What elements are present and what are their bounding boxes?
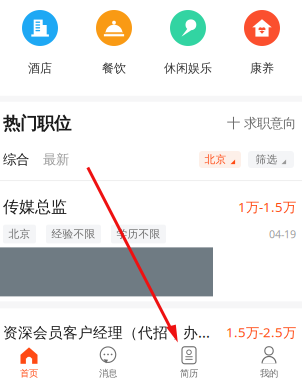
staticText: 消息 <box>99 368 117 379</box>
button[interactable]: 传媒总监 <box>0 181 302 243</box>
staticText: 酒店 <box>28 61 52 76</box>
button[interactable]: 首页 <box>0 347 59 379</box>
button[interactable]: 筛选 <box>241 151 294 168</box>
button[interactable]: 酒店 <box>3 10 77 76</box>
staticText: 传媒总监 <box>3 197 67 217</box>
button[interactable]: 康养 <box>225 10 299 76</box>
staticText: 我的 <box>260 368 278 379</box>
staticText: 1.5万-2.5万 <box>226 323 296 341</box>
staticText: 餐饮 <box>102 61 126 76</box>
staticText: 04-19 <box>269 227 296 241</box>
button[interactable]: 资深会员客户经理（代招，办公… <box>0 308 302 342</box>
staticText: 综合 <box>3 151 29 168</box>
staticText: 休闲娱乐 <box>164 61 212 76</box>
staticText: 学历不限 <box>116 227 160 241</box>
staticText: 康养 <box>250 61 274 76</box>
button[interactable]: 综合 <box>3 151 36 168</box>
staticText: 经验不限 <box>51 227 95 241</box>
button[interactable]: 休闲娱乐 <box>151 10 225 76</box>
button[interactable]: 餐饮 <box>77 10 151 76</box>
staticText: 筛选 <box>255 153 277 166</box>
button[interactable]: 北京 <box>199 151 241 168</box>
staticText: 北京 <box>204 153 226 166</box>
staticText: 资深会员客户经理（代招，办公… <box>3 322 222 342</box>
staticText: 简历 <box>180 368 198 379</box>
staticText: 1万-1.5万 <box>238 198 296 216</box>
button[interactable]: 消息 <box>78 347 138 379</box>
button[interactable]: 十 求职意向 <box>227 115 296 132</box>
button[interactable]: 我的 <box>239 347 299 379</box>
button[interactable]: 最新 <box>36 151 76 168</box>
staticText: 最新 <box>43 151 69 168</box>
staticText: 首页 <box>20 368 38 379</box>
staticText: 热门职位 <box>3 113 71 134</box>
button[interactable]: 简历 <box>159 347 219 379</box>
staticText: 十 求职意向 <box>227 115 296 132</box>
staticText: 北京 <box>8 227 30 241</box>
